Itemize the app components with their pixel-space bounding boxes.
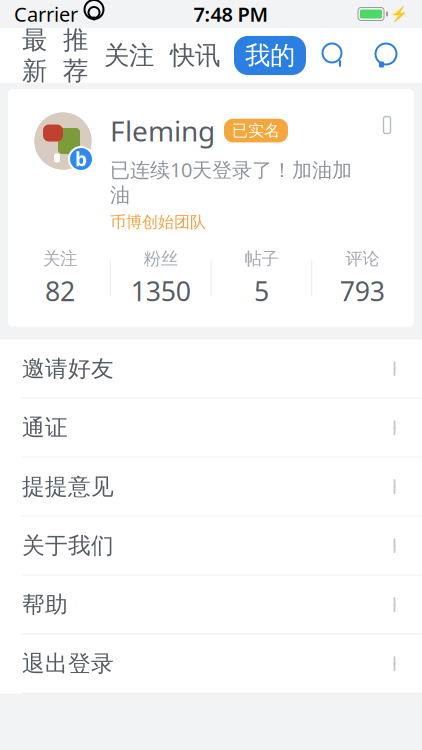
staticText: 推荐 xyxy=(63,24,88,87)
staticText: 通证 xyxy=(22,414,68,441)
staticText: 我的 xyxy=(245,40,295,71)
staticText: 帮助 xyxy=(22,591,68,618)
staticText: 7:48 PM xyxy=(193,1,268,27)
staticText: 粉丝 xyxy=(144,248,178,269)
button[interactable]: 帮助 xyxy=(0,576,422,634)
button[interactable]: Messages xyxy=(372,41,400,69)
staticText: 关注 xyxy=(43,248,77,269)
button[interactable]: 通证 xyxy=(0,399,422,457)
staticText: 关于我们 xyxy=(22,532,114,559)
button[interactable]: 快讯 xyxy=(162,35,228,75)
button[interactable]: 我的 xyxy=(234,36,306,75)
staticText: ⚡ xyxy=(390,6,408,22)
staticText: b xyxy=(75,147,87,171)
button[interactable]: 最新 xyxy=(14,35,55,75)
button[interactable]: 提提意见 xyxy=(0,458,422,516)
button[interactable]: 评论 xyxy=(312,248,412,309)
staticText: 退出登录 xyxy=(22,650,114,677)
staticText: 1350 xyxy=(131,273,191,309)
staticText: 币博创始团队 xyxy=(110,212,206,232)
staticText: Carrier xyxy=(14,1,78,27)
staticText: 评论 xyxy=(345,248,379,269)
button[interactable]: Edit profile xyxy=(376,114,398,136)
staticText: 关注 xyxy=(104,40,154,71)
staticText: 已实名 xyxy=(232,121,280,140)
button[interactable]: 关注 xyxy=(10,248,110,309)
staticText: 793 xyxy=(340,273,385,309)
button[interactable]: 退出登录 xyxy=(0,635,422,693)
button[interactable]: 邀请好友 xyxy=(0,340,422,398)
staticText: Fleming xyxy=(110,112,215,149)
button[interactable]: 帖子 xyxy=(211,248,311,309)
button[interactable]: 关注 xyxy=(96,35,162,75)
button[interactable]: 粉丝 xyxy=(111,248,211,309)
button[interactable]: 推荐 xyxy=(55,35,96,75)
staticText: 已连续10天登录了！加油加油 xyxy=(110,156,352,207)
staticText: 邀请好友 xyxy=(22,355,114,382)
staticText: 5 xyxy=(254,273,269,309)
button[interactable]: Search xyxy=(320,41,348,69)
button[interactable]: 关于我们 xyxy=(0,517,422,575)
staticText: 提提意见 xyxy=(22,473,114,500)
staticText: 82 xyxy=(45,273,75,309)
staticText: 帖子 xyxy=(244,248,278,269)
staticText: 快讯 xyxy=(170,40,220,71)
staticText: 最新 xyxy=(22,24,47,87)
